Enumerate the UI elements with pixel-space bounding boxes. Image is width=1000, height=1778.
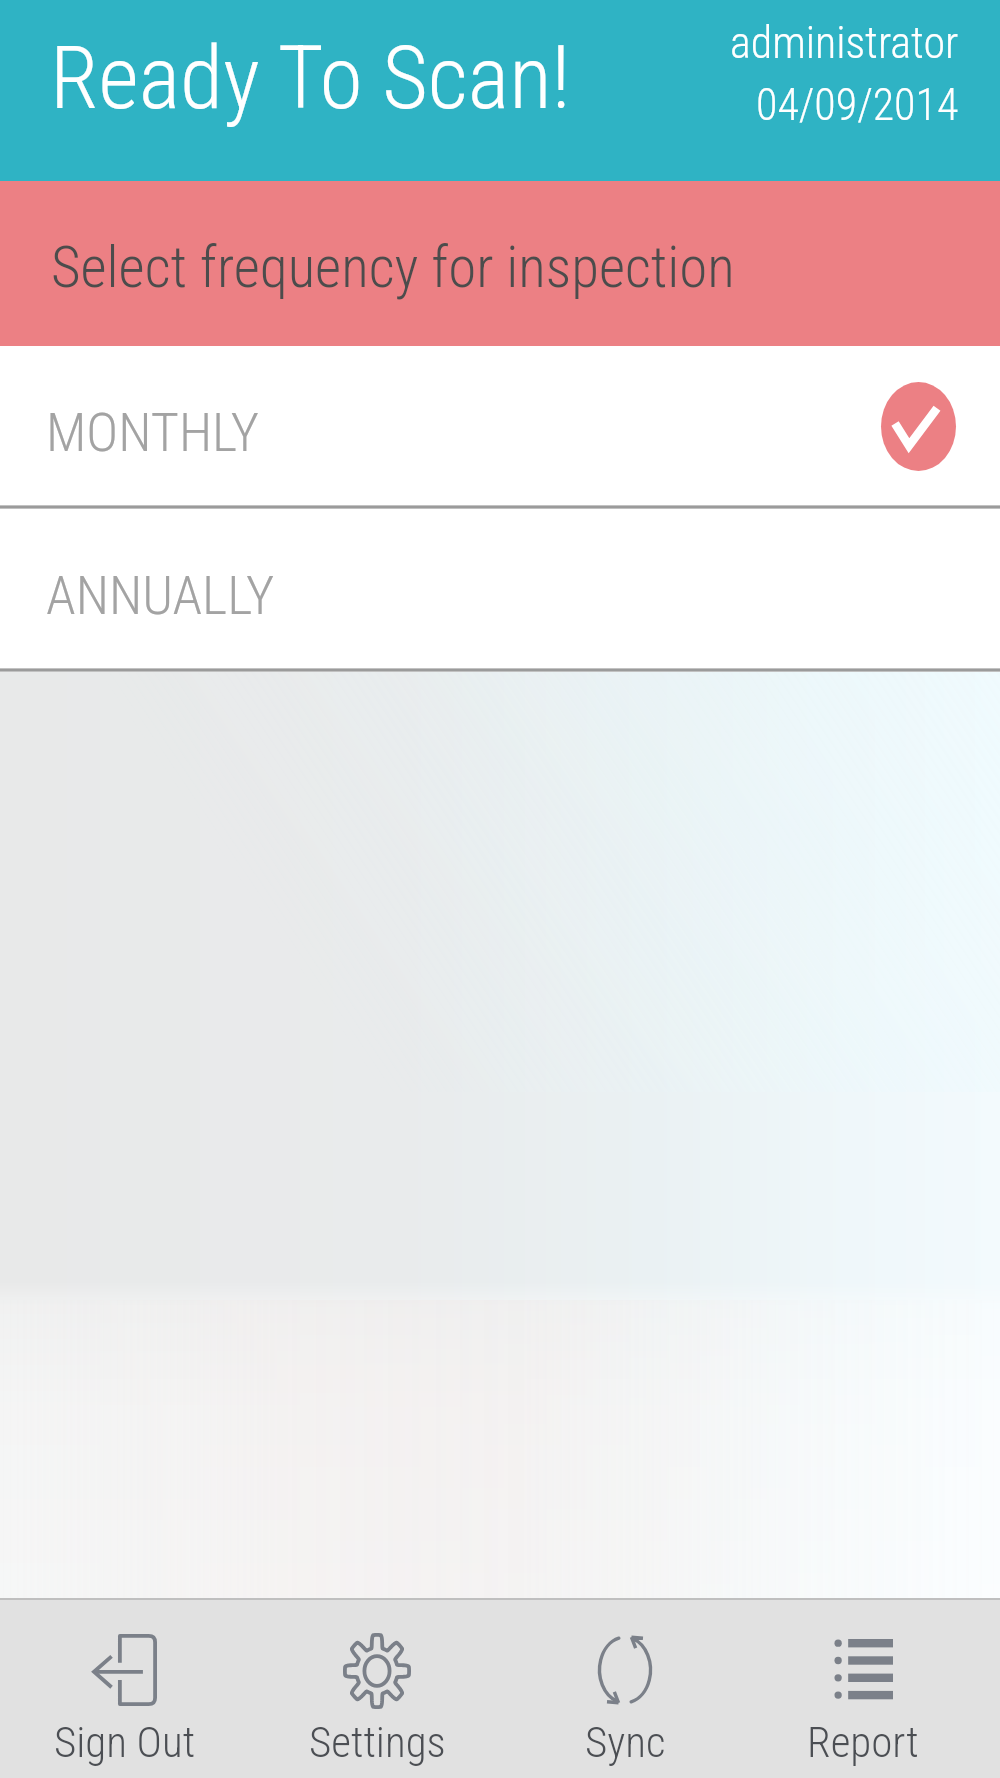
other: Selected (881, 382, 956, 471)
button[interactable]: MONTHLY (0, 346, 1000, 505)
other: Settings (343, 1633, 411, 1709)
other: Report (834, 1639, 893, 1712)
button[interactable]: ANNUALLY (0, 509, 1000, 668)
staticText: Sync (585, 1717, 666, 1767)
staticText: administrator (730, 17, 959, 69)
staticText: Ready To Scan! (50, 26, 571, 129)
button[interactable]: Sign Out (0, 1600, 250, 1778)
staticText: Settings (309, 1717, 446, 1767)
staticText: MONTHLY (46, 401, 260, 464)
staticText: Sign Out (54, 1717, 196, 1767)
staticText: Report (807, 1717, 919, 1767)
staticText: 04/09/2014 (756, 79, 959, 131)
other: Sync (596, 1630, 654, 1710)
button[interactable]: Sync (500, 1600, 750, 1778)
button[interactable]: Report (750, 1600, 1000, 1778)
staticText: Select frequency for inspection (51, 234, 735, 301)
other: Sign Out (93, 1634, 157, 1706)
staticText: ANNUALLY (46, 564, 275, 627)
button[interactable]: Settings (250, 1600, 500, 1778)
